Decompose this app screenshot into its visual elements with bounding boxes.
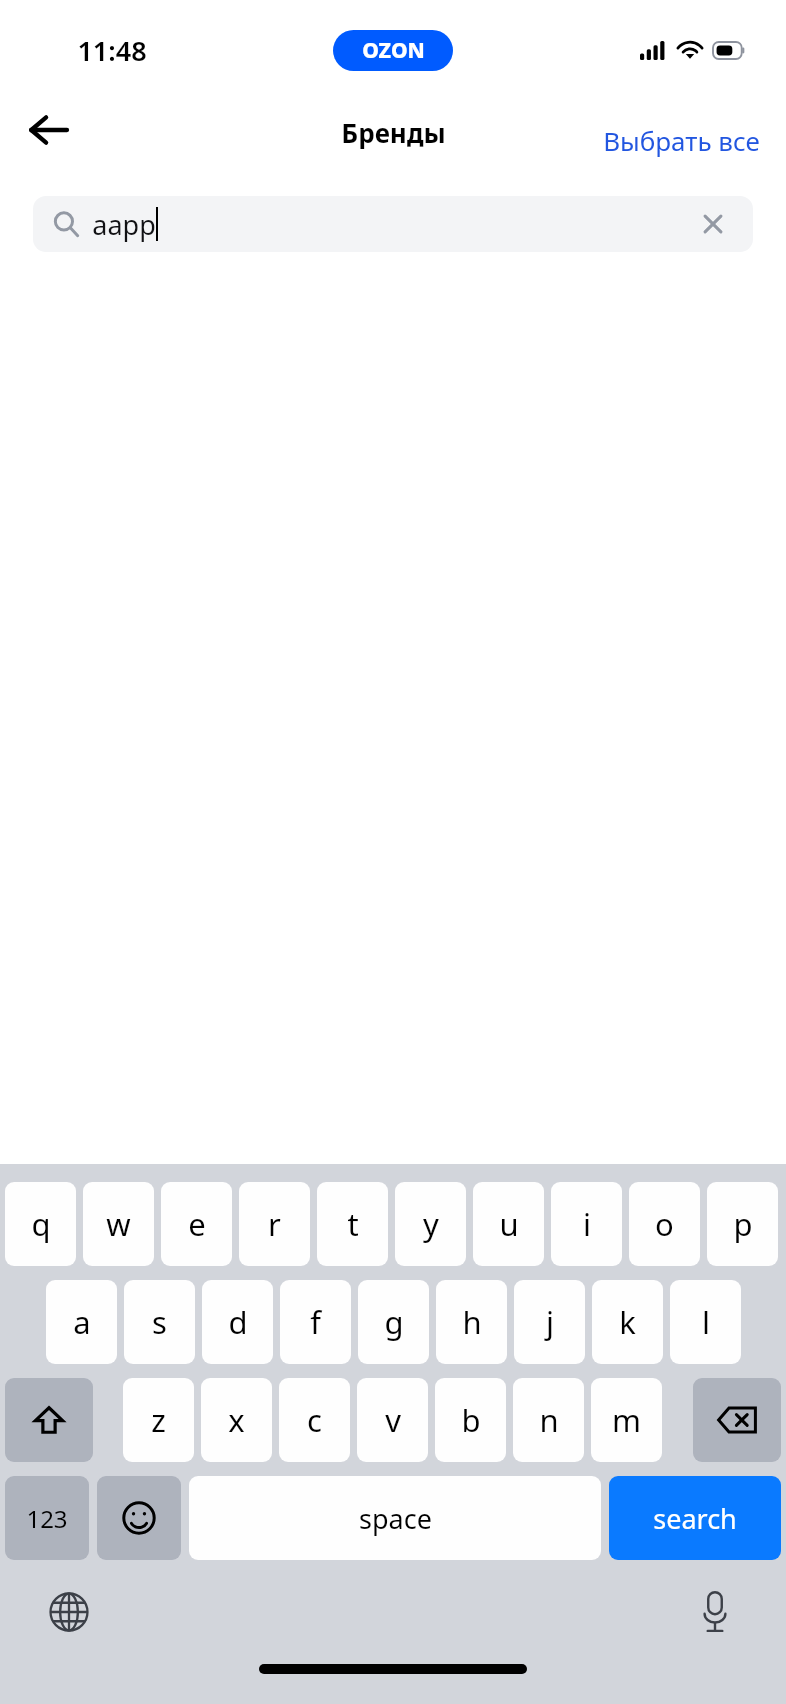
staticText: k	[619, 1301, 636, 1343]
button[interactable]: o	[629, 1182, 700, 1266]
button[interactable]: s	[124, 1280, 195, 1364]
button[interactable]: search	[609, 1476, 781, 1560]
button[interactable]: Shift	[5, 1378, 93, 1462]
staticText: g	[384, 1301, 404, 1343]
staticText: o	[655, 1203, 674, 1245]
button[interactable]: l	[670, 1280, 741, 1364]
button[interactable]: k	[592, 1280, 663, 1364]
staticText: 11:48	[77, 32, 147, 69]
button[interactable]: aapp	[33, 196, 753, 252]
staticText: b	[461, 1399, 481, 1441]
button[interactable]: Backspace	[693, 1378, 781, 1462]
staticText: search	[653, 1500, 737, 1537]
button[interactable]: Clear search	[687, 198, 739, 250]
staticText: a	[73, 1301, 91, 1343]
staticText: q	[31, 1203, 51, 1245]
button[interactable]: Back	[14, 96, 82, 164]
button[interactable]: c	[279, 1378, 350, 1462]
staticText: x	[228, 1399, 245, 1441]
button[interactable]: m	[591, 1378, 662, 1462]
staticText: c	[307, 1399, 322, 1441]
staticText: i	[583, 1203, 591, 1245]
staticText: e	[188, 1203, 206, 1245]
button[interactable]: f	[280, 1280, 351, 1364]
staticText: u	[499, 1203, 519, 1245]
staticText: w	[106, 1203, 131, 1245]
button[interactable]: q	[5, 1182, 76, 1266]
staticText: n	[539, 1399, 559, 1441]
button[interactable]: g	[358, 1280, 429, 1364]
staticText: s	[152, 1301, 167, 1343]
button[interactable]: z	[123, 1378, 194, 1462]
staticText: aapp	[92, 206, 156, 243]
staticText: t	[347, 1203, 359, 1245]
staticText: d	[228, 1301, 248, 1343]
staticText: y	[423, 1203, 439, 1245]
button[interactable]: a	[46, 1280, 117, 1364]
button[interactable]: r	[239, 1182, 310, 1266]
staticText: r	[268, 1203, 281, 1245]
button[interactable]: Change keyboard language	[38, 1581, 100, 1643]
staticText: 123	[26, 1502, 68, 1535]
staticText: f	[310, 1301, 321, 1343]
staticText: v	[385, 1399, 401, 1441]
button[interactable]: y	[395, 1182, 466, 1266]
staticText: z	[151, 1399, 166, 1441]
staticText: h	[462, 1301, 482, 1343]
button[interactable]: space	[189, 1476, 601, 1560]
staticText: Выбрать все	[603, 123, 760, 158]
button[interactable]: w	[83, 1182, 154, 1266]
button[interactable]: h	[436, 1280, 507, 1364]
button[interactable]: i	[551, 1182, 622, 1266]
staticText: OZON	[362, 36, 425, 65]
staticText: Бренды	[341, 115, 446, 150]
button[interactable]: t	[317, 1182, 388, 1266]
staticText: l	[702, 1301, 710, 1343]
staticText: space	[359, 1500, 432, 1537]
button[interactable]: x	[201, 1378, 272, 1462]
button[interactable]: Voice input	[684, 1581, 746, 1643]
button[interactable]: Emoji	[97, 1476, 181, 1560]
staticText: m	[612, 1399, 641, 1441]
button[interactable]: n	[513, 1378, 584, 1462]
button[interactable]: j	[514, 1280, 585, 1364]
button[interactable]: e	[161, 1182, 232, 1266]
button[interactable]: d	[202, 1280, 273, 1364]
button[interactable]: Выбрать все	[595, 113, 768, 168]
button[interactable]: v	[357, 1378, 428, 1462]
button[interactable]: OZON	[333, 30, 453, 71]
button[interactable]: p	[707, 1182, 778, 1266]
staticText: j	[546, 1301, 554, 1343]
button[interactable]: 123	[5, 1476, 89, 1560]
staticText: p	[733, 1203, 753, 1245]
button[interactable]: b	[435, 1378, 506, 1462]
button[interactable]: u	[473, 1182, 544, 1266]
